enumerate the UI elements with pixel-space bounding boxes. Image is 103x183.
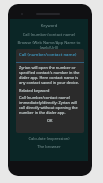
staticText: Call (number/contact name) xyxy=(19,51,77,57)
button[interactable]: Send Recognition: Recognition xyxy=(10,120,88,125)
button[interactable]: Browse (Web Name/App Name to (web/Url)) xyxy=(10,40,88,50)
button[interactable]: Keyword xyxy=(10,23,88,28)
button[interactable]: OK xyxy=(16,118,84,123)
staticText: Related keyword xyxy=(19,88,50,93)
staticText: Zyrian will open the number or specified… xyxy=(19,65,81,85)
button[interactable]: Call (number/contact name) xyxy=(10,32,88,37)
button[interactable]: The browser xyxy=(10,144,88,149)
button[interactable]: Calculate (expression) xyxy=(10,136,88,141)
staticText: Call (number/contact name) immediately/d… xyxy=(19,95,81,115)
button[interactable]: Send Email: Start Email Sender xyxy=(10,128,88,133)
staticText: OK xyxy=(47,118,53,123)
